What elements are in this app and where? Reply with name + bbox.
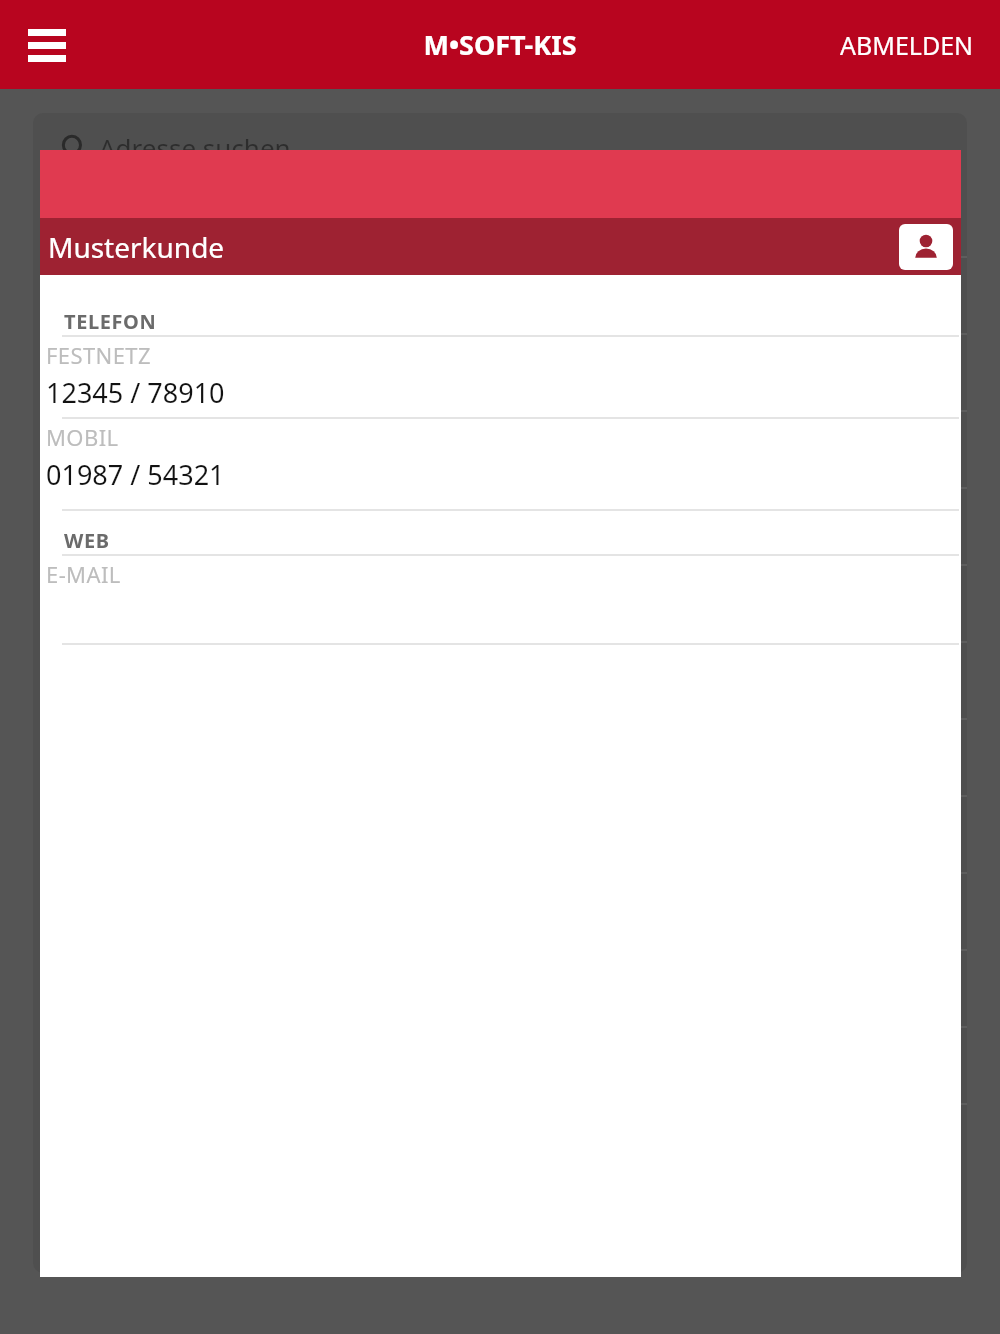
staticText: 12345 / 78910 [46, 374, 225, 411]
staticText: Adresse suchen [99, 130, 291, 165]
staticText: E-MAIL [46, 559, 121, 589]
staticText: WEB [64, 527, 110, 554]
staticText: FESTNETZ [46, 340, 151, 370]
button[interactable]: Menü [14, 12, 80, 78]
staticText: Musterkunde [48, 228, 225, 266]
staticText: TELEFON [64, 308, 157, 335]
button[interactable]: FESTNETZ [40, 337, 961, 417]
button[interactable]: Kontakt [899, 224, 953, 270]
button[interactable]: ABMELDEN [814, 10, 1000, 80]
staticText: 01987 / 54321 [46, 456, 225, 493]
staticText: MOBIL [46, 422, 119, 452]
button[interactable]: MOBIL [40, 419, 961, 499]
staticText: ABMELDEN [840, 28, 974, 62]
staticText: M•SOFT-KIS [423, 26, 577, 63]
button[interactable]: E-MAIL [40, 556, 961, 633]
